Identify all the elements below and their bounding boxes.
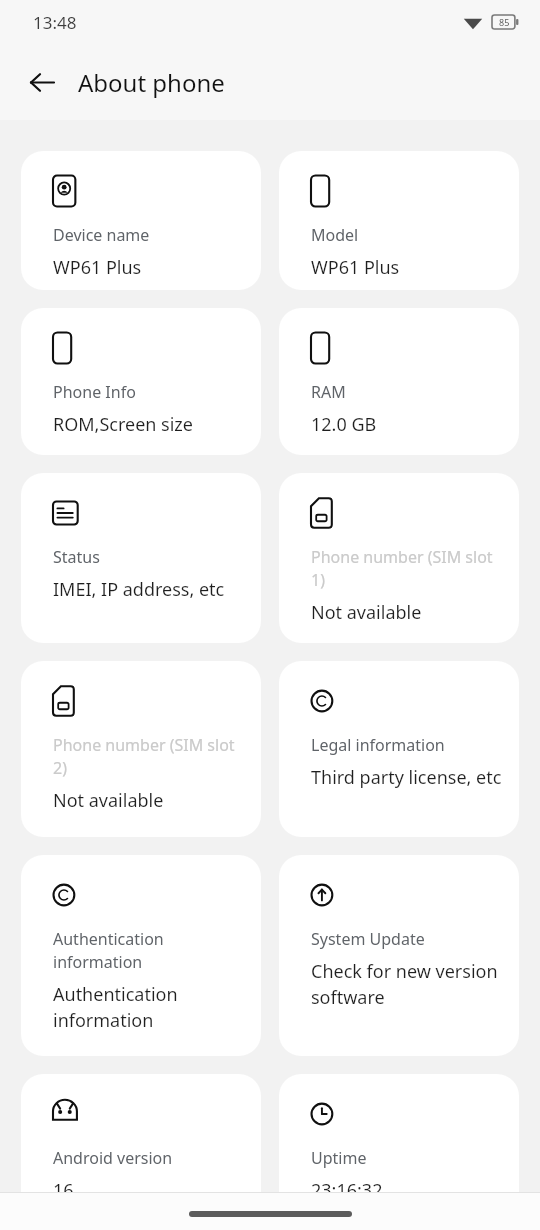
staticText: Phone number (SIM slot 2)	[53, 734, 247, 779]
staticText: Model	[311, 224, 359, 246]
staticText: 16	[53, 1178, 74, 1203]
staticText: Status	[53, 546, 100, 568]
staticText: IMEI, IP address, etc	[53, 577, 225, 602]
staticText: Authentication information	[53, 982, 247, 1032]
staticText: 85	[499, 16, 510, 28]
button[interactable]: Android version	[21, 1074, 261, 1230]
button[interactable]: Status	[21, 473, 261, 643]
staticText: Not available	[53, 788, 164, 813]
staticText: 13:48	[33, 11, 77, 34]
staticText: Not available	[311, 600, 422, 625]
staticText: ROM,Screen size	[53, 412, 193, 437]
staticText: 23:16:32	[311, 1178, 383, 1203]
staticText: About phone	[78, 66, 225, 99]
button[interactable]: RAM	[279, 308, 519, 455]
staticText: Phone Info	[53, 381, 136, 403]
staticText: 12.0 GB	[311, 412, 377, 437]
button[interactable]: Phone number (SIM slot 1)	[279, 473, 519, 643]
button[interactable]: Back	[20, 60, 64, 104]
staticText: Phone number (SIM slot 1)	[311, 546, 505, 591]
staticText: Check for new version software	[311, 959, 505, 1009]
staticText: Authentication information	[53, 928, 247, 973]
staticText: Uptime	[311, 1147, 367, 1169]
staticText: WP61 Plus	[311, 255, 400, 280]
button[interactable]: Phone Info	[21, 308, 261, 455]
button[interactable]: Legal information	[279, 661, 519, 837]
staticText: WP61 Plus	[53, 255, 142, 280]
staticText: Third party license, etc	[311, 765, 502, 790]
button[interactable]: Device name	[21, 151, 261, 290]
staticText: Android version	[53, 1147, 173, 1169]
button[interactable]: Model	[279, 151, 519, 290]
button[interactable]: Phone number (SIM slot 2)	[21, 661, 261, 837]
staticText: System Update	[311, 928, 425, 950]
staticText: Device name	[53, 224, 150, 246]
button[interactable]: System Update	[279, 855, 519, 1056]
staticText: Legal information	[311, 734, 445, 756]
staticText: RAM	[311, 381, 346, 403]
button[interactable]: Uptime	[279, 1074, 519, 1230]
button[interactable]: Authentication information	[21, 855, 261, 1056]
